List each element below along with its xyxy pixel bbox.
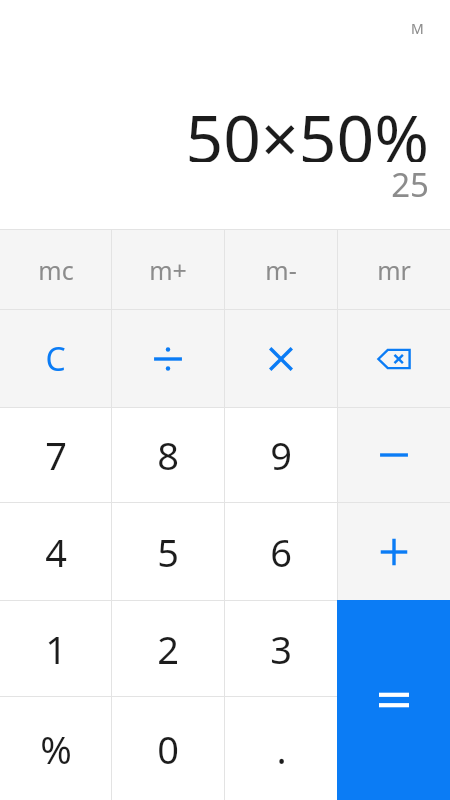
button[interactable]: Minus [338,408,450,502]
button[interactable]: m+ [112,230,224,309]
button[interactable]: mc [0,230,111,309]
button[interactable]: m- [225,230,337,309]
staticText: mc [38,253,74,287]
staticText: 4 [45,526,67,578]
button[interactable]: Equals [337,600,450,800]
staticText: 3 [270,623,292,675]
button[interactable]: Plus [338,503,450,600]
staticText: 6 [270,526,292,578]
button[interactable]: Divide [112,310,224,407]
button[interactable]: 5 [112,503,224,600]
button[interactable]: Backspace [338,310,450,407]
staticText: . [276,723,287,775]
staticText: 8 [157,429,179,481]
button[interactable]: mr [338,230,450,309]
button[interactable]: Multiply [225,310,337,407]
button[interactable]: 1 [0,601,111,696]
button[interactable]: 4 [0,503,111,600]
button[interactable]: 7 [0,408,111,502]
staticText: m+ [149,253,187,287]
button[interactable]: 8 [112,408,224,502]
staticText: 0 [157,723,179,775]
button[interactable]: 6 [225,503,337,600]
staticText: 50×50% [185,92,429,162]
staticText: M [411,19,424,38]
staticText: 7 [45,429,67,481]
button[interactable]: 3 [225,601,337,696]
staticText: 25 [391,162,429,202]
staticText: C [45,337,66,381]
button[interactable]: 2 [112,601,224,696]
staticText: mr [377,253,411,287]
staticText: 9 [270,429,292,481]
staticText: 5 [157,526,179,578]
button[interactable]: Memory indicator [402,17,432,39]
staticText: % [40,723,72,775]
button[interactable]: % [0,697,111,800]
staticText: 2 [157,623,179,675]
button[interactable]: C [0,310,111,407]
button[interactable]: 9 [225,408,337,502]
button[interactable]: 0 [112,697,224,800]
button[interactable]: . [225,697,337,800]
staticText: m- [265,253,297,287]
staticText: 1 [45,623,67,675]
